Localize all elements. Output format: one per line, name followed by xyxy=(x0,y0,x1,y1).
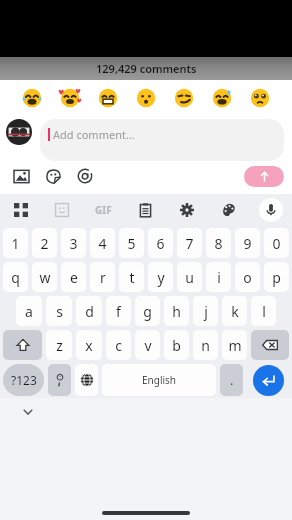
staticText: English xyxy=(142,373,177,387)
staticText: 7 xyxy=(185,234,194,253)
staticText: h xyxy=(172,302,181,321)
button[interactable]: v xyxy=(135,330,160,360)
button[interactable]: Emoji and comma xyxy=(48,364,71,396)
staticText: d xyxy=(85,302,94,321)
staticText: t xyxy=(129,268,135,287)
staticText: x xyxy=(85,336,93,355)
button[interactable]: i xyxy=(206,262,231,292)
staticText: 9 xyxy=(243,234,252,253)
button[interactable]: Voice input xyxy=(250,194,292,226)
staticText: ?123 xyxy=(11,372,37,388)
button[interactable]: English xyxy=(102,364,216,396)
staticText: e xyxy=(70,268,78,287)
button[interactable]: h xyxy=(164,296,189,326)
button[interactable]: e xyxy=(61,262,86,292)
button[interactable]: a xyxy=(16,296,42,326)
button[interactable]: 7 xyxy=(177,228,202,258)
button[interactable]: x xyxy=(76,330,102,360)
button[interactable]: . xyxy=(220,364,243,396)
button[interactable]: 6 xyxy=(148,228,173,258)
button[interactable]: Emoji xyxy=(96,86,120,110)
button[interactable]: 129,429 comments xyxy=(0,57,292,80)
staticText: u xyxy=(185,268,194,287)
button[interactable]: u xyxy=(177,262,202,292)
button[interactable]: Backspace xyxy=(251,330,289,360)
button[interactable]: c xyxy=(106,330,131,360)
button[interactable]: k xyxy=(222,296,247,326)
button[interactable]: Themes xyxy=(208,194,250,226)
button[interactable]: z xyxy=(46,330,72,360)
button[interactable]: Enter xyxy=(253,365,284,396)
button[interactable]: r xyxy=(90,262,115,292)
button[interactable]: y xyxy=(148,262,173,292)
staticText: . xyxy=(230,371,234,389)
button[interactable]: Send xyxy=(244,166,284,187)
button[interactable]: f xyxy=(106,296,131,326)
button[interactable]: 4 xyxy=(90,228,115,258)
button[interactable]: Emoji xyxy=(248,86,272,110)
staticText: a xyxy=(25,302,33,321)
button[interactable]: Emoji xyxy=(172,86,196,110)
button[interactable]: Add comment... xyxy=(40,119,284,161)
button[interactable]: Emoji xyxy=(210,86,234,110)
staticText: w xyxy=(39,268,51,287)
staticText: c xyxy=(115,336,122,355)
staticText: s xyxy=(56,302,63,321)
button[interactable]: Change language xyxy=(75,364,98,396)
button[interactable]: 9 xyxy=(235,228,260,258)
button[interactable]: Sticker xyxy=(42,165,64,187)
staticText: 2 xyxy=(40,234,49,253)
staticText: y xyxy=(157,268,165,287)
button[interactable]: o xyxy=(235,262,260,292)
staticText: l xyxy=(262,302,266,321)
button[interactable]: Apps xyxy=(0,194,41,226)
button[interactable]: p xyxy=(264,262,289,292)
staticText: p xyxy=(272,268,281,287)
staticText: GIF xyxy=(95,203,112,217)
button[interactable]: d xyxy=(76,296,102,326)
button[interactable]: 0 xyxy=(264,228,289,258)
button[interactable]: Clipboard xyxy=(124,194,166,226)
staticText: v xyxy=(144,336,152,355)
button[interactable]: 2 xyxy=(32,228,57,258)
button[interactable]: b xyxy=(164,330,189,360)
button[interactable]: Emoji xyxy=(134,86,158,110)
button[interactable]: Emoji xyxy=(20,86,44,110)
button[interactable]: 1 xyxy=(3,228,28,258)
button[interactable]: Profile xyxy=(6,119,32,145)
staticText: 4 xyxy=(98,234,107,253)
button[interactable]: 5 xyxy=(119,228,144,258)
staticText: 8 xyxy=(214,234,223,253)
button[interactable]: ?123 xyxy=(3,364,44,396)
button[interactable]: 3 xyxy=(61,228,86,258)
staticText: k xyxy=(231,302,239,321)
button[interactable]: GIF xyxy=(82,194,124,226)
button[interactable]: g xyxy=(135,296,160,326)
staticText: f xyxy=(116,302,121,321)
staticText: o xyxy=(243,268,252,287)
staticText: z xyxy=(56,336,63,355)
button[interactable]: Emoji xyxy=(58,86,82,110)
button[interactable]: Add photo xyxy=(10,165,32,187)
button[interactable]: w xyxy=(32,262,57,292)
button[interactable]: Hide keyboard xyxy=(20,404,36,420)
button[interactable]: m xyxy=(222,330,247,360)
button[interactable]: Stickers xyxy=(41,194,82,226)
button[interactable]: n xyxy=(193,330,218,360)
staticText: Add comment... xyxy=(53,127,135,142)
button[interactable]: q xyxy=(3,262,28,292)
staticText: q xyxy=(11,268,20,287)
staticText: 0 xyxy=(272,234,281,253)
button[interactable]: s xyxy=(46,296,72,326)
staticText: m xyxy=(228,336,242,355)
staticText: g xyxy=(143,302,152,321)
button[interactable]: l xyxy=(251,296,276,326)
staticText: b xyxy=(172,336,181,355)
button[interactable]: Mention xyxy=(74,165,96,187)
button[interactable]: Settings xyxy=(166,194,208,226)
button[interactable]: t xyxy=(119,262,144,292)
button[interactable]: j xyxy=(193,296,218,326)
button[interactable]: 8 xyxy=(206,228,231,258)
staticText: 6 xyxy=(156,234,165,253)
button[interactable]: Shift xyxy=(3,330,42,360)
